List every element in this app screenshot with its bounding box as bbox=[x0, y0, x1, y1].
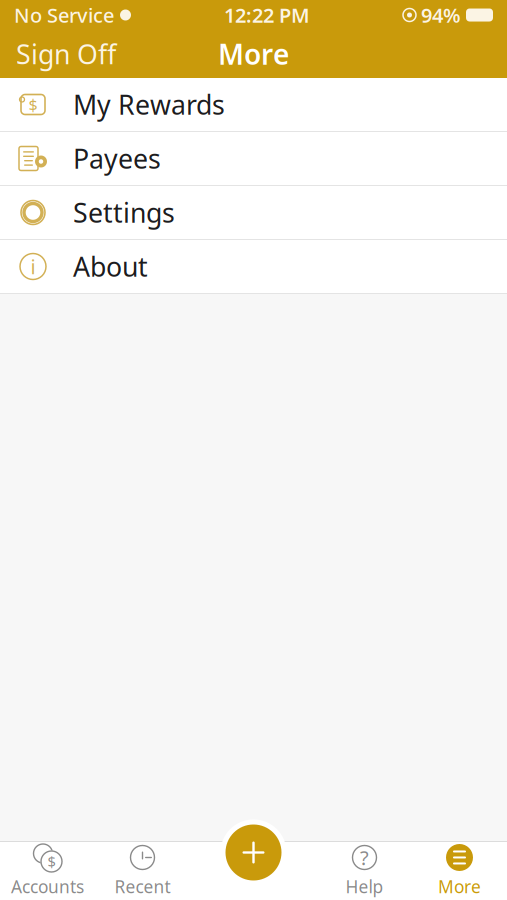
button[interactable]: $ bbox=[0, 842, 95, 900]
button[interactable]: Payees bbox=[0, 132, 507, 186]
button[interactable]: i bbox=[0, 240, 507, 294]
button[interactable]: Sign Off bbox=[0, 31, 132, 77]
button[interactable]: Recent bbox=[95, 842, 190, 900]
staticText: $ bbox=[47, 852, 55, 871]
staticText: My Rewards bbox=[73, 87, 225, 122]
staticText: Settings bbox=[73, 195, 175, 230]
button[interactable]: $ bbox=[0, 78, 507, 132]
button[interactable]: Add bbox=[220, 819, 286, 885]
button[interactable]: ? bbox=[317, 842, 412, 900]
button[interactable]: More bbox=[412, 842, 507, 900]
staticText: About bbox=[73, 249, 148, 284]
staticText: Recent bbox=[114, 875, 170, 898]
staticText: ? bbox=[360, 844, 369, 871]
staticText: Help bbox=[345, 875, 383, 898]
staticText: Sign Off bbox=[16, 36, 116, 72]
staticText: i bbox=[30, 253, 35, 280]
staticText: Accounts bbox=[11, 875, 84, 898]
button[interactable]: Settings bbox=[0, 186, 507, 240]
staticText: More bbox=[438, 875, 481, 898]
staticText: $ bbox=[28, 94, 37, 115]
staticText: No Service bbox=[14, 2, 114, 28]
staticText: 94% bbox=[421, 2, 461, 28]
staticText: 12:22 PM bbox=[224, 2, 310, 28]
staticText: More bbox=[218, 35, 289, 73]
staticText: Payees bbox=[73, 141, 161, 176]
